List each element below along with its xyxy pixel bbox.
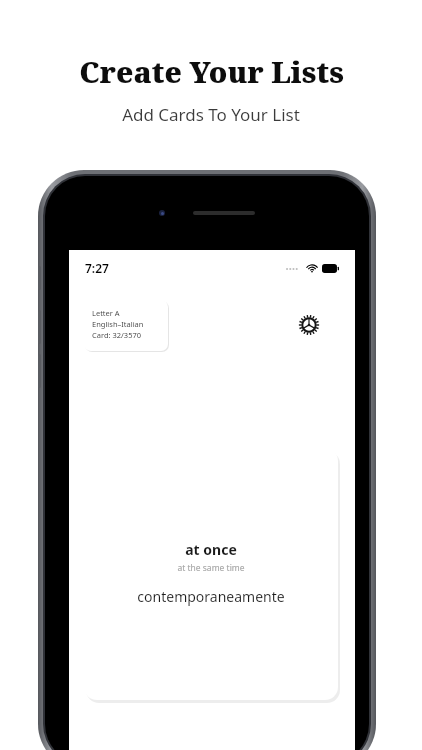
staticText: at once	[185, 540, 237, 559]
staticText: Letter A	[92, 308, 120, 318]
staticText: Card: 32/3570	[92, 330, 141, 340]
staticText: contemporaneamente	[137, 587, 285, 606]
staticText: 7:27	[85, 260, 109, 276]
button[interactable]: Letter A	[84, 300, 170, 353]
staticText: English–Italian	[92, 319, 144, 329]
staticText: Create Your Lists	[79, 52, 344, 91]
button[interactable]: Settings	[289, 305, 329, 345]
button[interactable]: at once	[84, 448, 340, 703]
staticText: Add Cards To Your List	[122, 103, 300, 126]
staticText: at the same time	[177, 562, 245, 574]
